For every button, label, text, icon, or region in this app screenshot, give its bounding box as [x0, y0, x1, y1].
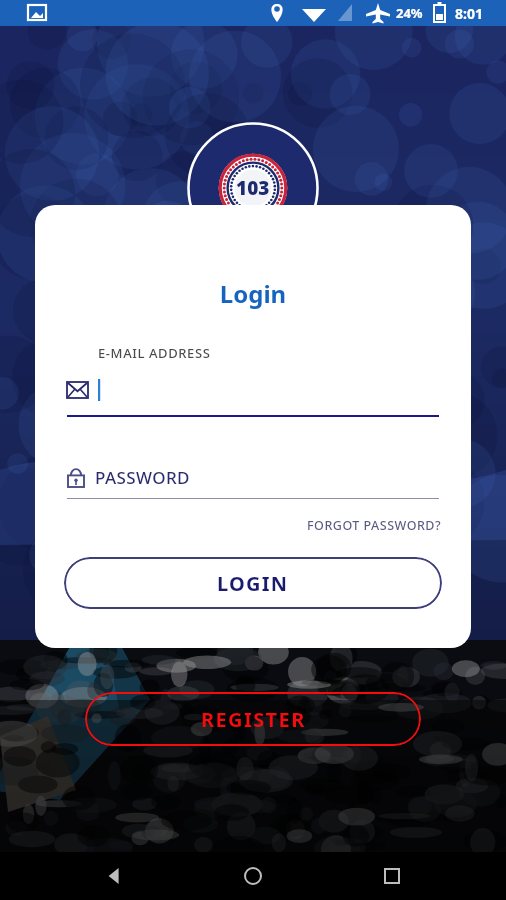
staticText: FORGOT PASSWORD?	[307, 517, 442, 534]
staticText: 8:01	[455, 4, 483, 23]
button[interactable]: Home	[229, 852, 277, 900]
staticText: PASSWORD	[95, 466, 190, 489]
other: App logo	[187, 122, 319, 254]
button[interactable]: Recent apps	[368, 852, 416, 900]
staticText: REGISTER	[201, 706, 306, 733]
staticText: 103	[236, 175, 270, 201]
staticText: 24%	[396, 4, 423, 22]
button[interactable]: PASSWORD	[67, 462, 439, 492]
button[interactable]: LOGIN	[64, 557, 442, 609]
staticText: Login	[35, 277, 471, 310]
button[interactable]: Back	[91, 852, 139, 900]
button[interactable]: FORGOT PASSWORD?	[303, 513, 446, 538]
staticText: LOGIN	[217, 570, 289, 597]
button[interactable]	[67, 374, 439, 406]
button[interactable]: REGISTER	[85, 692, 421, 746]
staticText: E-MAIL ADDRESS	[98, 344, 211, 362]
